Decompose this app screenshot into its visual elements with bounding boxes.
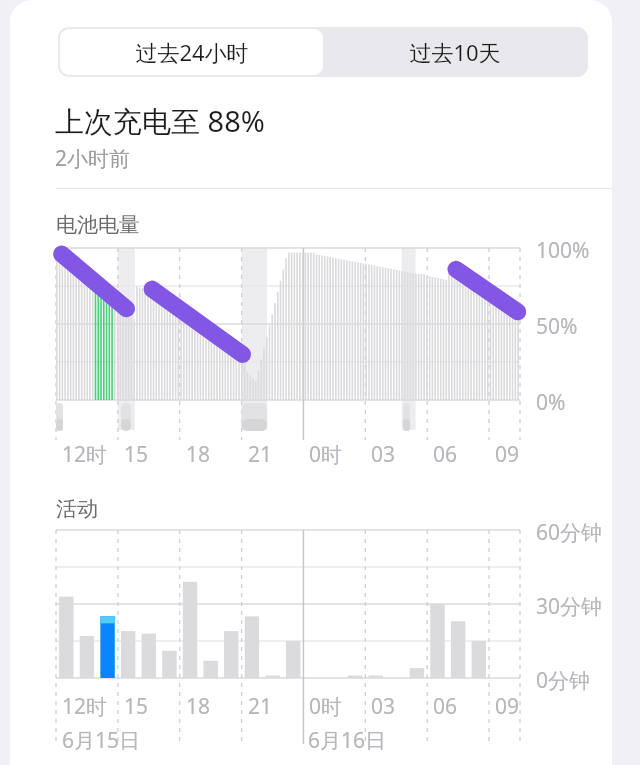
staticText: 18	[186, 440, 211, 469]
staticText: 0时	[309, 440, 343, 469]
staticText: 03	[371, 440, 396, 469]
staticText: 100%	[536, 236, 590, 265]
staticText: 12时	[62, 692, 108, 721]
staticText: 15	[124, 440, 149, 469]
staticText: 03	[371, 692, 396, 721]
staticText: 30分钟	[536, 592, 603, 621]
staticText: 过去24小时	[135, 37, 249, 67]
staticText: 09	[495, 692, 520, 721]
staticText: 12时	[62, 440, 108, 469]
staticText: 06	[433, 440, 458, 469]
staticText: 50%	[536, 312, 578, 341]
staticText: 活动	[56, 496, 98, 522]
staticText: 09	[495, 440, 520, 469]
staticText: 6月16日	[308, 726, 387, 755]
staticText: 21	[248, 692, 273, 721]
staticText: 0分钟	[536, 666, 591, 695]
staticText: 0时	[309, 692, 343, 721]
staticText: 电池电量	[56, 212, 140, 238]
staticText: 0%	[536, 388, 566, 417]
staticText: 18	[186, 692, 211, 721]
staticText: 过去10天	[409, 37, 501, 67]
staticText: 2小时前	[55, 144, 131, 173]
button[interactable]: 过去24小时	[60, 29, 323, 75]
staticText: 6月15日	[62, 726, 141, 755]
staticText: 06	[433, 692, 458, 721]
staticText: 21	[248, 440, 273, 469]
staticText: 15	[124, 692, 149, 721]
staticText: 上次充电至 88%	[55, 101, 265, 141]
staticText: 60分钟	[536, 518, 603, 547]
button[interactable]: 过去10天	[323, 29, 586, 75]
